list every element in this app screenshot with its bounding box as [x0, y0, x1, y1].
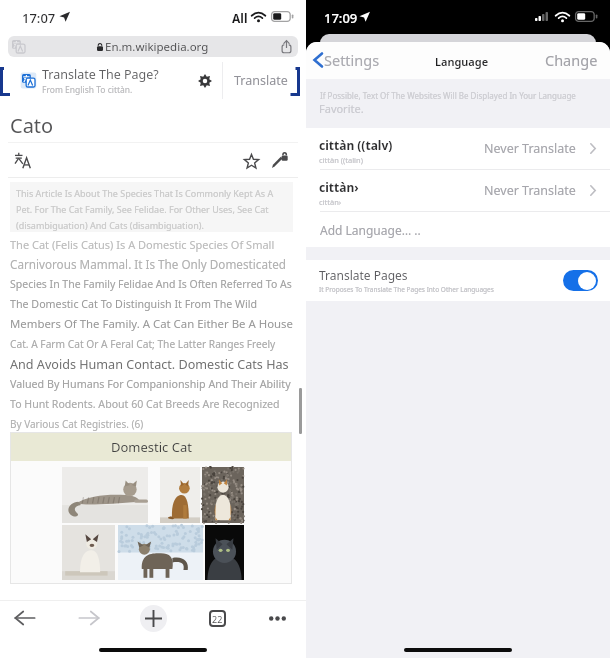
staticText: Favorite. — [319, 101, 364, 116]
staticText: Change — [545, 50, 598, 70]
staticText: And Avoids Human Contact. Domestic Cats … — [10, 356, 289, 373]
button[interactable]: Forward — [72, 601, 106, 635]
staticText: cittàn› — [319, 197, 342, 207]
staticText: Language — [435, 54, 489, 69]
staticText: Cato — [10, 112, 54, 139]
staticText: Translate Pages — [319, 267, 408, 283]
staticText: If Possible, Text Of The Websites Will B… — [320, 90, 576, 101]
staticText: cittàn› — [319, 179, 359, 195]
staticText: cittàn ((talv) — [319, 137, 393, 153]
staticText: 17:07 — [22, 9, 56, 27]
staticText: This Article Is About The Species That I… — [16, 187, 274, 199]
staticText: Translate — [234, 72, 288, 89]
button[interactable]: Translate The Page? — [22, 62, 202, 99]
staticText: Species In The Family Felidae And Is Oft… — [10, 277, 292, 291]
staticText: It Proposes To Translate The Pages Into … — [319, 285, 494, 294]
button[interactable]: Add Language… .. — [306, 212, 610, 247]
button[interactable]: Language — [14, 152, 31, 169]
button[interactable]: Back — [8, 601, 42, 635]
staticText: From English To cittàn. — [42, 84, 133, 96]
staticText: Never Translate — [484, 182, 576, 199]
button[interactable]: cittàn› — [306, 170, 610, 211]
staticText: 17:09 — [324, 9, 358, 27]
button[interactable]: New tab — [136, 601, 170, 635]
button[interactable]: cittàn ((talv) — [306, 128, 610, 169]
button[interactable]: Translation settings — [198, 74, 212, 88]
staticText: Valued By Humans For Companionship And T… — [10, 377, 291, 392]
staticText: Members Of The Family. A Cat Can Either … — [10, 316, 293, 332]
button[interactable]: Settings — [313, 50, 380, 70]
staticText: Add Language… .. — [320, 222, 421, 238]
staticText: Carnivorous Mammal. It Is The Only Domes… — [10, 256, 286, 272]
button[interactable]: Translate Pages — [306, 260, 610, 301]
staticText: Cat. A Farm Cat Or A Feral Cat; The Latt… — [10, 337, 276, 351]
staticText: All — [232, 10, 248, 26]
staticText: By Various Cat Registries. (6) — [10, 417, 144, 431]
staticText: cittàn ((talin) — [319, 155, 363, 165]
staticText: To Hunt Rodents. About 60 Cat Breeds Are… — [10, 397, 280, 411]
staticText: The Domestic Cat To Distinguish It From … — [10, 297, 258, 312]
button[interactable]: Translate — [234, 72, 288, 89]
staticText: The Cat (Felis Catus) Is A Domestic Spec… — [10, 237, 275, 252]
button[interactable]: Watch page — [244, 154, 259, 169]
staticText: Translate The Page? — [42, 66, 159, 83]
staticText: En.m.wikipedia.org — [105, 39, 209, 55]
staticText: 22 — [212, 613, 223, 625]
staticText: (disambiguation) And Cats (disambiguatio… — [16, 219, 204, 231]
button[interactable]: Tabs — [200, 601, 234, 635]
button[interactable]: En.m.wikipedia.org — [8, 36, 298, 57]
staticText: Never Translate — [484, 140, 576, 157]
button[interactable]: Change — [545, 50, 598, 70]
button[interactable]: Edit page — [272, 152, 288, 168]
staticText: Domestic Cat — [111, 438, 192, 456]
staticText: Pet. For The Cat Family, See Felidae. Fo… — [16, 203, 269, 215]
staticText: Settings — [324, 50, 380, 70]
button[interactable]: More — [260, 601, 294, 635]
